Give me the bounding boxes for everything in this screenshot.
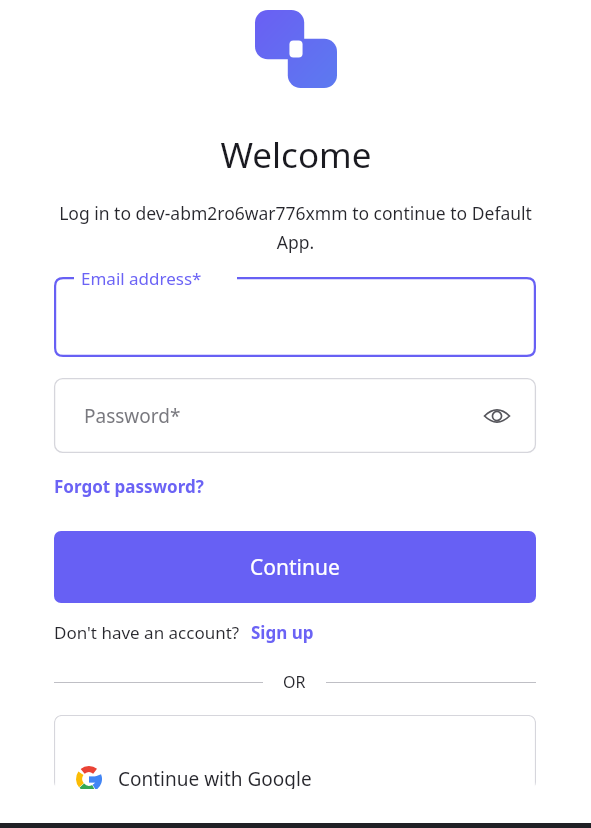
button[interactable]: Show password (480, 399, 514, 433)
staticText: Email address* (81, 267, 202, 290)
staticText: Continue with Google (118, 766, 312, 789)
button[interactable]: Continue with Google (54, 715, 536, 789)
staticText: Welcome (220, 131, 372, 179)
staticText: Log in to dev-abm2ro6war776xmm to contin… (58, 201, 533, 254)
button[interactable]: Password* (54, 378, 536, 453)
button[interactable]: Email address* (54, 277, 536, 357)
staticText: Sign up (251, 621, 314, 644)
staticText: Continue (250, 553, 340, 582)
button[interactable]: Continue (54, 531, 536, 603)
button[interactable]: Sign up (251, 621, 314, 644)
staticText: Forgot password? (54, 475, 204, 498)
button[interactable]: Forgot password? (54, 473, 204, 500)
staticText: OR (283, 671, 306, 693)
staticText: Don't have an account? (54, 621, 240, 644)
staticText: Password* (84, 403, 181, 429)
